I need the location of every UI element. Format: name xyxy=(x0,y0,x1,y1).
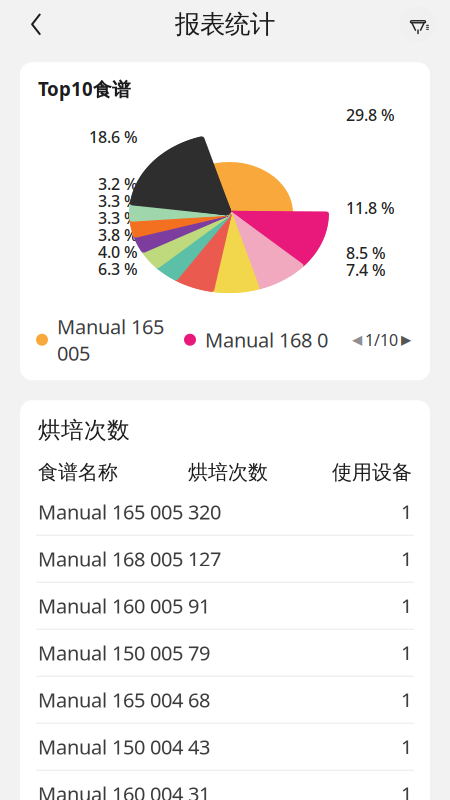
button[interactable]: Manual 165 005 xyxy=(20,489,430,536)
staticText: 320 xyxy=(188,498,221,525)
staticText: 29.8 % xyxy=(346,104,395,125)
staticText: 1 xyxy=(401,498,412,525)
staticText: 烘培次数 xyxy=(188,460,268,485)
button[interactable]: 返回 xyxy=(14,2,58,46)
staticText: 食谱名称 xyxy=(38,460,118,485)
staticText: Manual 150 005 xyxy=(38,639,183,666)
staticText: 烘培次数 xyxy=(38,416,130,444)
staticText: 43 xyxy=(188,733,210,760)
button[interactable]: Manual 168 005 xyxy=(20,536,430,583)
staticText: 11.8 % xyxy=(346,197,395,218)
staticText: 1 xyxy=(401,780,412,800)
staticText: 79 xyxy=(188,639,210,666)
staticText: 1 xyxy=(401,686,412,713)
staticText: 1 xyxy=(401,545,412,572)
staticText: 3.8 % xyxy=(98,224,138,245)
staticText: ▶ xyxy=(401,332,411,347)
staticText: 报表统计 xyxy=(175,9,275,40)
staticText: Manual 160 005 xyxy=(38,592,183,619)
staticText: 18.6 % xyxy=(89,126,138,147)
staticText: Manual 150 004 xyxy=(38,733,183,760)
button[interactable]: 筛选 xyxy=(400,6,436,42)
button[interactable]: Manual 150 004 xyxy=(20,724,430,771)
staticText: 4.0 % xyxy=(98,241,138,262)
button[interactable]: Manual 160 004 xyxy=(20,771,430,800)
button[interactable]: Manual 165 004 xyxy=(20,677,430,724)
staticText: ◀ xyxy=(352,332,362,347)
staticText: Manual 165 005 xyxy=(57,313,164,366)
staticText: Manual 168 0 xyxy=(205,326,328,353)
staticText: 1/10 xyxy=(365,329,398,350)
staticText: 91 xyxy=(188,592,210,619)
button[interactable]: 下一页 xyxy=(398,330,414,350)
staticText: 7.4 % xyxy=(346,259,386,280)
staticText: 3.3 % xyxy=(98,190,138,211)
staticText: 1 xyxy=(401,639,412,666)
staticText: 31 xyxy=(188,780,210,800)
staticText: 127 xyxy=(188,545,221,572)
staticText: Manual 168 005 xyxy=(38,545,183,572)
staticText: 8.5 % xyxy=(346,242,386,263)
staticText: 1 xyxy=(401,592,412,619)
staticText: 3.3 % xyxy=(98,207,138,228)
staticText: Manual 165 004 xyxy=(38,686,183,713)
button[interactable]: Manual 160 005 xyxy=(20,583,430,630)
staticText: 使用设备 xyxy=(332,460,412,485)
staticText: Top10食谱 xyxy=(38,76,131,101)
staticText: 68 xyxy=(188,686,210,713)
staticText: 1 xyxy=(401,733,412,760)
button[interactable]: Manual 150 005 xyxy=(20,630,430,677)
staticText: Manual 165 005 xyxy=(38,498,183,525)
staticText: 3.2 % xyxy=(98,173,138,194)
staticText: 6.3 % xyxy=(98,258,138,279)
staticText: Manual 160 004 xyxy=(38,780,183,800)
button[interactable]: 上一页 xyxy=(349,330,365,350)
